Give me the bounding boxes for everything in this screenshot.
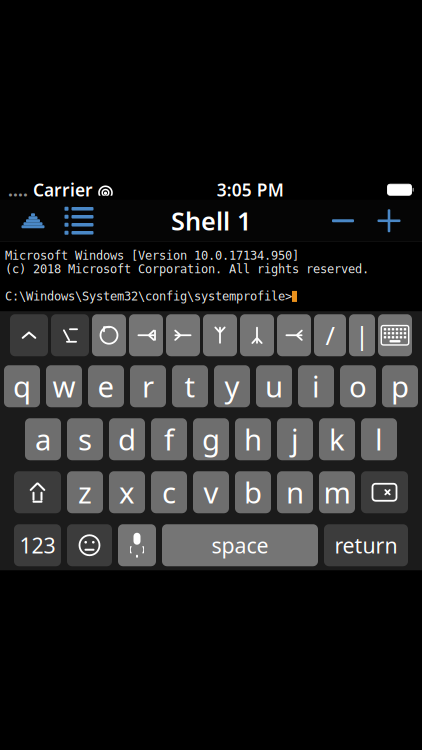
staticText: y: [224, 367, 239, 406]
staticText: g: [202, 420, 220, 459]
staticText: o: [349, 367, 367, 406]
button[interactable]: g: [193, 418, 229, 460]
staticText: ....: [8, 178, 28, 201]
button[interactable]: Option: [51, 314, 89, 356]
button[interactable]: Up arrow: [203, 314, 237, 356]
button[interactable]: Control: [10, 314, 48, 356]
button[interactable]: Down arrow: [240, 314, 274, 356]
button[interactable]: /: [314, 314, 346, 356]
button[interactable]: b: [235, 471, 271, 513]
button[interactable]: f: [151, 418, 187, 460]
button[interactable]: Hide keyboard: [378, 314, 412, 356]
staticText: s: [78, 420, 92, 459]
button[interactable]: o: [340, 365, 376, 407]
button[interactable]: s: [67, 418, 103, 460]
button[interactable]: Decrease font size: [320, 201, 366, 241]
staticText: p: [391, 367, 409, 406]
button[interactable]: return: [324, 524, 408, 566]
button[interactable]: h: [235, 418, 271, 460]
staticText: space: [211, 531, 268, 559]
button[interactable]: w: [46, 365, 82, 407]
button[interactable]: l: [361, 418, 397, 460]
staticText: w: [52, 367, 75, 406]
button[interactable]: Run: [10, 201, 56, 241]
button[interactable]: p: [382, 365, 418, 407]
button[interactable]: Right arrow: [277, 314, 311, 356]
staticText: m: [323, 473, 350, 512]
staticText: C:\Windows\System32\config\systemprofile…: [5, 290, 292, 303]
button[interactable]: r: [130, 365, 166, 407]
staticText: l: [375, 420, 383, 459]
staticText: d: [118, 420, 136, 459]
staticText: return: [334, 531, 397, 559]
staticText: n: [286, 473, 304, 512]
staticText: 123: [19, 531, 55, 559]
button[interactable]: a: [25, 418, 61, 460]
staticText: u: [265, 367, 283, 406]
staticText: v: [203, 473, 218, 512]
staticText: (c) 2018 Microsoft Corporation. All righ…: [5, 262, 369, 276]
button[interactable]: y: [214, 365, 250, 407]
button[interactable]: 123: [14, 524, 61, 566]
button[interactable]: Delete: [361, 471, 408, 513]
staticText: q: [13, 367, 31, 406]
button[interactable]: c: [151, 471, 187, 513]
button[interactable]: Left arrow: [166, 314, 200, 356]
staticText: t: [184, 367, 195, 406]
button[interactable]: i: [298, 365, 334, 407]
staticText: r: [142, 367, 154, 406]
button[interactable]: Shift: [14, 471, 61, 513]
button[interactable]: v: [193, 471, 229, 513]
button[interactable]: z: [67, 471, 103, 513]
staticText: i: [312, 367, 320, 406]
button[interactable]: k: [319, 418, 355, 460]
button[interactable]: Tab: [129, 314, 163, 356]
staticText: c: [162, 473, 176, 512]
button[interactable]: Emoji: [67, 524, 112, 566]
staticText: b: [244, 473, 262, 512]
staticText: k: [329, 420, 345, 459]
button[interactable]: e: [88, 365, 124, 407]
button[interactable]: d: [109, 418, 145, 460]
button[interactable]: u: [256, 365, 292, 407]
button[interactable]: space: [162, 524, 318, 566]
button[interactable]: m: [319, 471, 355, 513]
button[interactable]: t: [172, 365, 208, 407]
staticText: x: [119, 473, 135, 512]
button[interactable]: j: [277, 418, 313, 460]
staticText: f: [164, 420, 174, 459]
staticText: h: [244, 420, 262, 459]
staticText: a: [35, 420, 51, 459]
button[interactable]: n: [277, 471, 313, 513]
button[interactable]: Dictation: [118, 524, 156, 566]
staticText: Microsoft Windows [Version 10.0.17134.95…: [5, 249, 299, 262]
staticText: Shell 1: [171, 204, 251, 237]
button[interactable]: Shells: [56, 201, 102, 241]
button[interactable]: |: [349, 314, 375, 356]
button[interactable]: New shell: [366, 201, 412, 241]
button[interactable]: q: [4, 365, 40, 407]
staticText: z: [78, 473, 92, 512]
staticText: /: [325, 318, 334, 352]
staticText: 3:05 PM: [217, 178, 284, 201]
staticText: Carrier: [28, 178, 98, 201]
button[interactable]: x: [109, 471, 145, 513]
staticText: |: [355, 318, 369, 352]
staticText: e: [97, 367, 114, 406]
button[interactable]: History: [92, 314, 126, 356]
staticText: j: [291, 420, 299, 459]
